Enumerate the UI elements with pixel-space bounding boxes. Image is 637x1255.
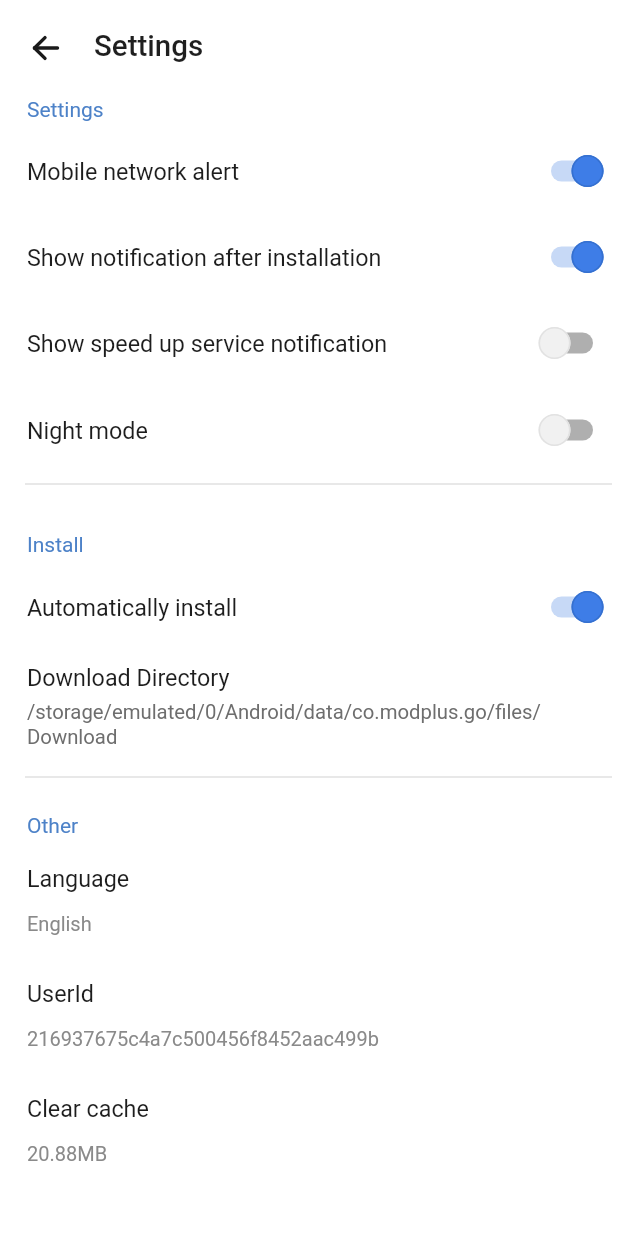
button[interactable]: Language [0,846,637,955]
staticText: English [27,912,92,935]
button[interactable]: Download Directory [0,648,637,758]
button[interactable]: Show speed up service notification [0,300,637,386]
staticText: /storage/emulated/0/Android/data/co.modp… [27,700,541,749]
button[interactable]: Show notification after installation [0,214,637,300]
staticText: Clear cache [27,1095,149,1122]
staticText: Language [27,865,130,892]
staticText: Automatically install [27,594,238,621]
button[interactable]: Night mode [0,387,637,473]
staticText: Mobile network alert [27,158,240,185]
staticText: Show notification after installation [27,244,382,271]
staticText: Download Directory [27,664,230,691]
staticText: Show speed up service notification [27,330,388,357]
staticText: 20.88MB [27,1142,108,1165]
staticText: Settings [94,29,204,64]
staticText: Other [27,814,79,839]
staticText: UserId [27,980,94,1007]
staticText: 216937675c4a7c500456f8452aac499b [27,1027,379,1050]
staticText: Settings [27,98,104,123]
button[interactable]: UserId [0,961,637,1070]
button[interactable]: Automatically install [0,564,637,650]
button[interactable] [26,28,66,68]
staticText: Install [27,533,84,558]
staticText: Night mode [27,417,148,444]
button[interactable]: Clear cache [0,1076,637,1185]
button[interactable]: Mobile network alert [0,128,637,214]
